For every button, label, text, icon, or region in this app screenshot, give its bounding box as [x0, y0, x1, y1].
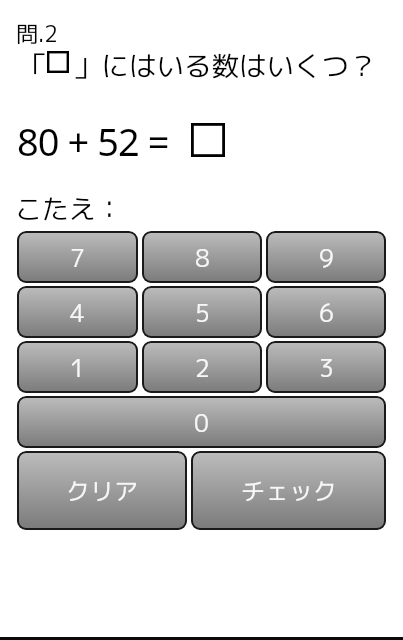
- staticText: 」にはいる数はいくつ？: [74, 46, 377, 84]
- button[interactable]: 0: [17, 396, 386, 448]
- staticText: 80 + 52 =: [17, 115, 169, 167]
- staticText: 2: [195, 351, 210, 384]
- staticText: 「: [19, 46, 47, 84]
- staticText: 6: [319, 296, 334, 329]
- staticText: 8: [195, 241, 210, 274]
- button[interactable]: 3: [266, 341, 386, 393]
- button[interactable]: 9: [266, 231, 386, 283]
- button[interactable]: 4: [17, 286, 138, 338]
- staticText: 1: [70, 351, 85, 384]
- button[interactable]: チェック: [191, 451, 386, 530]
- staticText: クリア: [66, 474, 138, 507]
- staticText: 問.2: [16, 18, 58, 49]
- button[interactable]: 6: [266, 286, 386, 338]
- staticText: 9: [319, 241, 334, 274]
- staticText: チェック: [241, 474, 337, 507]
- button[interactable]: 2: [142, 341, 262, 393]
- staticText: 4: [70, 296, 85, 329]
- button[interactable]: 5: [142, 286, 262, 338]
- staticText: こたえ：: [15, 190, 123, 228]
- staticText: 3: [319, 351, 334, 384]
- button[interactable]: 1: [17, 341, 138, 393]
- staticText: 5: [195, 296, 210, 329]
- button[interactable]: 7: [17, 231, 138, 283]
- button[interactable]: クリア: [17, 451, 187, 530]
- staticText: 0: [194, 406, 209, 439]
- staticText: 7: [70, 241, 85, 274]
- button[interactable]: 8: [142, 231, 262, 283]
